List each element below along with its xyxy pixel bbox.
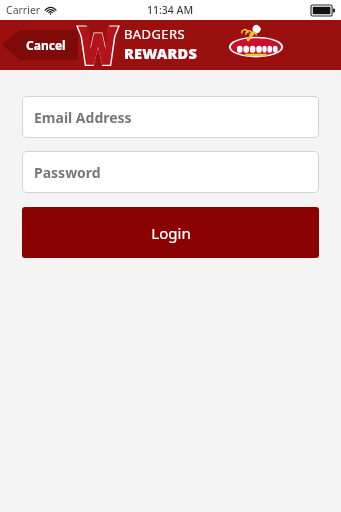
staticText: Cancel	[26, 37, 66, 53]
staticText: Email Address	[34, 108, 132, 127]
staticText: 11:34 AM	[147, 3, 194, 17]
staticText: BADGERS	[124, 25, 185, 43]
staticText: Carrier	[6, 3, 41, 17]
button[interactable]: Login	[22, 207, 319, 258]
staticText: REWARDS	[124, 43, 198, 63]
button[interactable]: Cancel	[2, 30, 78, 60]
button[interactable]: Email Address	[22, 96, 319, 138]
button[interactable]: Password	[22, 151, 319, 193]
staticText: Password	[34, 163, 101, 182]
staticText: Login	[151, 223, 191, 243]
